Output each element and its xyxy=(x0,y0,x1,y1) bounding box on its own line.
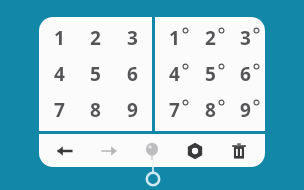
staticText: 6 xyxy=(240,61,251,87)
button[interactable]: 7 xyxy=(158,95,191,125)
staticText: 5 xyxy=(90,61,101,87)
button[interactable]: 4 xyxy=(158,59,191,89)
button[interactable]: 6 xyxy=(116,59,149,89)
staticText: 9 xyxy=(240,97,251,123)
staticText: 8 xyxy=(90,97,101,123)
button[interactable]: 7 xyxy=(43,95,76,125)
staticText: 7 xyxy=(169,97,180,123)
button[interactable]: Back xyxy=(48,134,82,167)
staticText: 9 xyxy=(127,97,138,123)
staticText: 8 xyxy=(205,97,216,123)
button[interactable]: 4 xyxy=(43,59,76,89)
button[interactable]: 2 xyxy=(79,23,112,53)
button[interactable]: 3 xyxy=(116,23,149,53)
staticText: 1 xyxy=(54,25,65,51)
button[interactable]: Delete xyxy=(222,134,256,167)
button[interactable]: 5 xyxy=(194,59,227,89)
button[interactable]: Forward xyxy=(92,134,126,167)
staticText: 2 xyxy=(205,25,216,51)
staticText: 7 xyxy=(54,97,65,123)
button[interactable]: 1 xyxy=(43,23,76,53)
staticText: 6 xyxy=(127,61,138,87)
button[interactable]: 1 xyxy=(158,23,191,53)
staticText: 5 xyxy=(205,61,216,87)
button[interactable]: Settings xyxy=(178,134,212,167)
staticText: 4 xyxy=(54,61,65,87)
staticText: 3 xyxy=(127,25,138,51)
button[interactable]: 8 xyxy=(194,95,227,125)
staticText: 4 xyxy=(169,61,180,87)
button[interactable]: Hint xyxy=(135,134,169,167)
button[interactable]: 6 xyxy=(229,59,262,89)
button[interactable]: 3 xyxy=(229,23,262,53)
staticText: 1 xyxy=(169,25,180,51)
button[interactable]: 9 xyxy=(116,95,149,125)
button[interactable]: 5 xyxy=(79,59,112,89)
button[interactable]: 8 xyxy=(79,95,112,125)
button[interactable]: 9 xyxy=(229,95,262,125)
staticText: 2 xyxy=(90,25,101,51)
button[interactable]: 2 xyxy=(194,23,227,53)
staticText: 3 xyxy=(240,25,251,51)
